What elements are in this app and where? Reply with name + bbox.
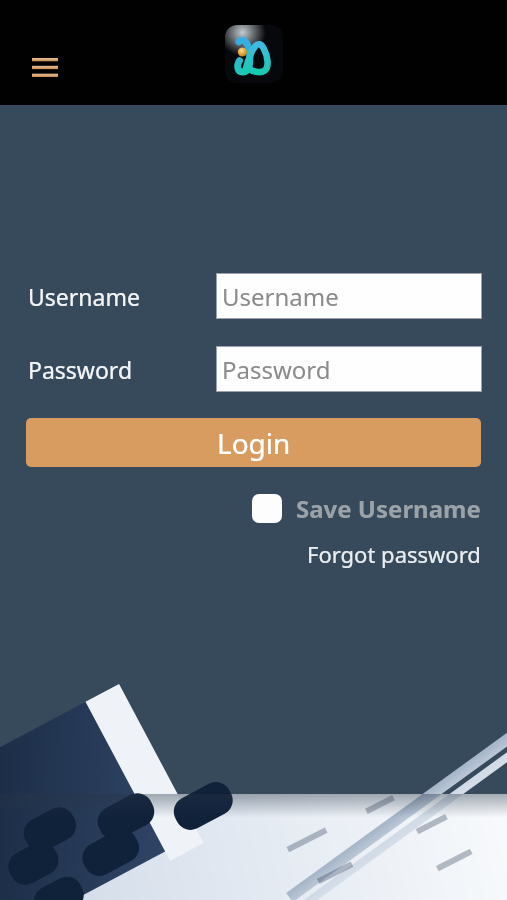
button[interactable]: Open navigation menu (21, 45, 68, 90)
staticText: Password (28, 354, 133, 385)
staticText: Login (217, 424, 291, 462)
staticText: Password (222, 353, 331, 386)
button[interactable]: Username (216, 273, 482, 319)
staticText: Save Username (296, 492, 481, 525)
button[interactable]: App logo (225, 25, 283, 83)
staticText: Forgot password (307, 539, 481, 569)
button[interactable]: Save Username (252, 492, 481, 525)
staticText: Username (222, 280, 339, 313)
button[interactable]: Forgot password (307, 539, 481, 569)
button[interactable]: Password (216, 346, 482, 392)
button[interactable]: Login (26, 418, 481, 467)
staticText: Username (28, 281, 140, 312)
